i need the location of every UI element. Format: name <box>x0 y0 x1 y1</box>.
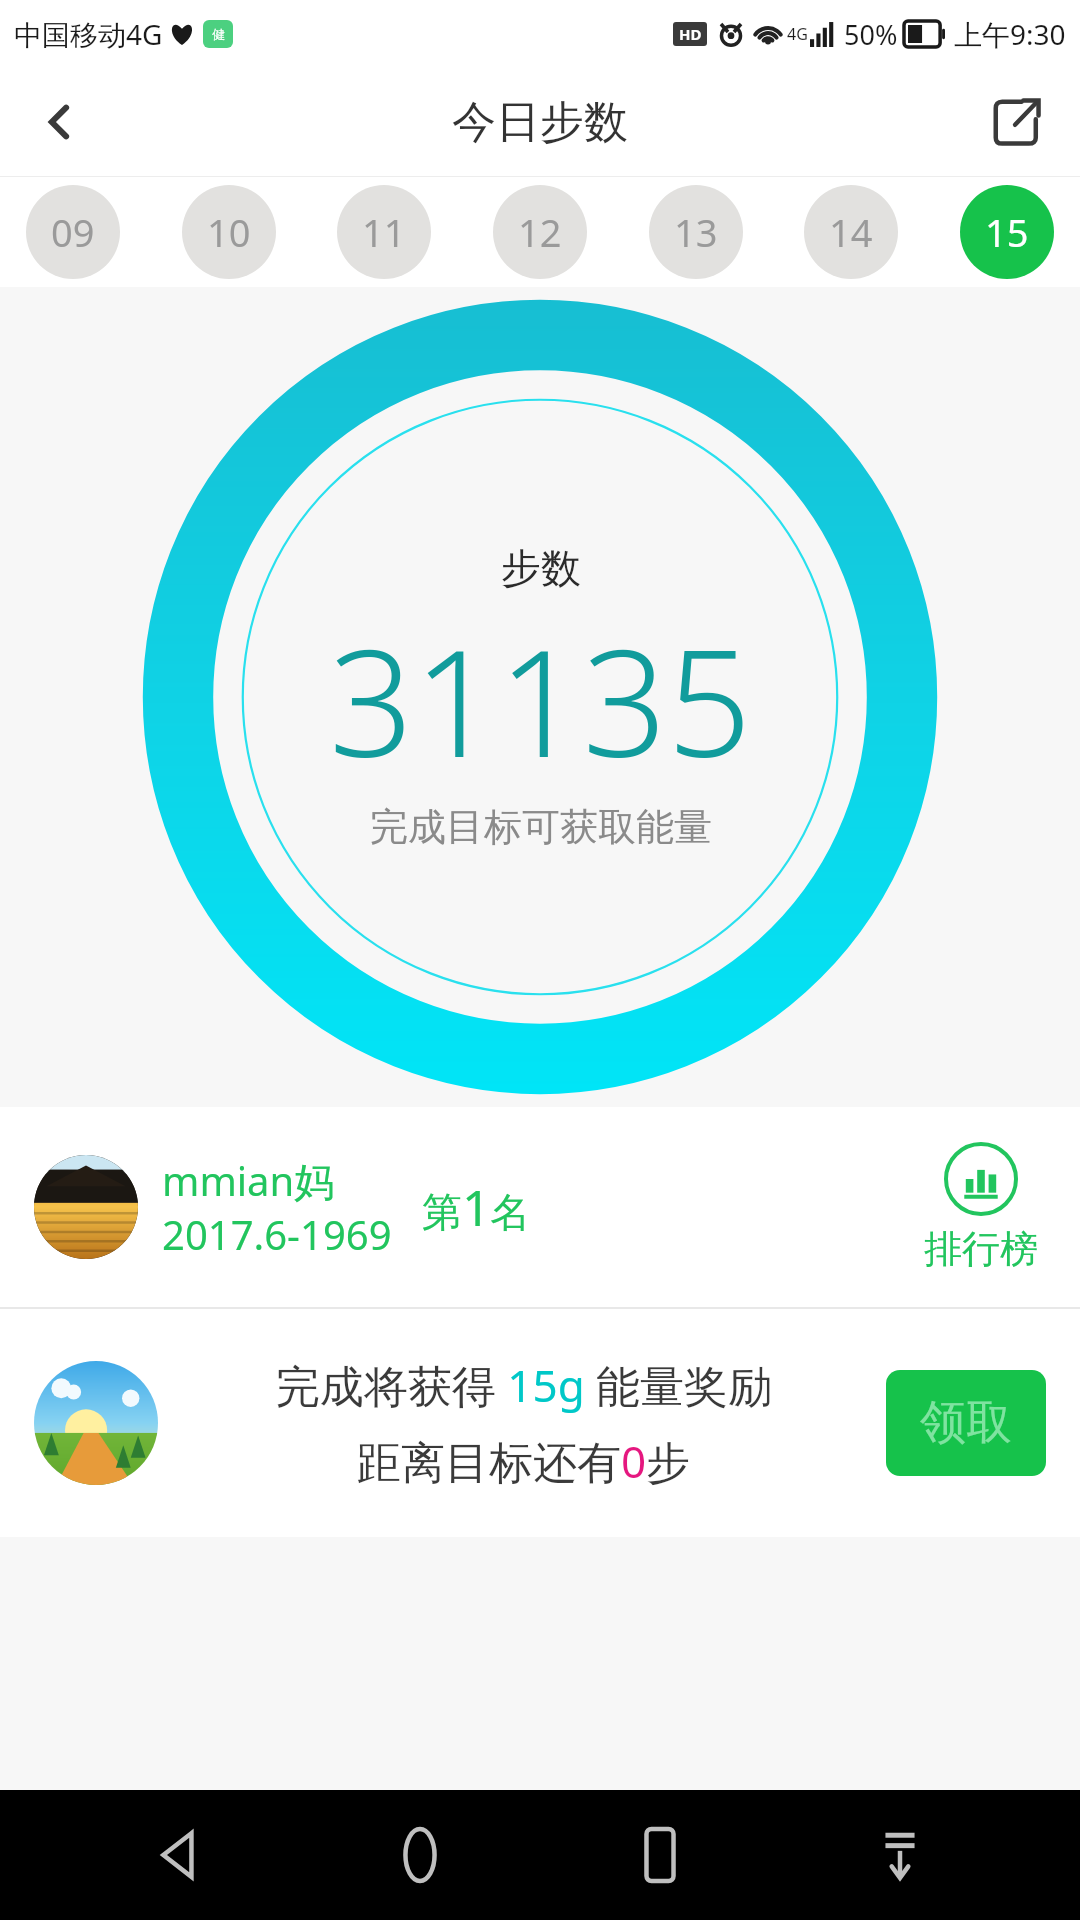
button[interactable]: 排行榜 <box>924 1141 1046 1273</box>
button[interactable]: Recents <box>600 1795 720 1915</box>
button[interactable]: Home <box>360 1795 480 1915</box>
button[interactable]: Back <box>20 82 100 162</box>
button[interactable]: 10 <box>182 185 276 279</box>
staticText: 12 <box>518 206 562 258</box>
staticText: 第1名 <box>422 1173 531 1241</box>
button[interactable]: 09 <box>26 185 120 279</box>
button[interactable]: 15 <box>960 185 1054 279</box>
button[interactable]: 11 <box>337 185 431 279</box>
staticText: 11 <box>362 206 406 258</box>
staticText: 10 <box>207 206 251 258</box>
button[interactable]: Notifications <box>840 1795 960 1915</box>
staticText: 距离目标还有0步 <box>357 1431 691 1491</box>
staticText: 14 <box>829 206 873 258</box>
staticText: 上午9:30 <box>954 15 1066 53</box>
staticText: HD <box>679 24 702 44</box>
staticText: 完成目标可获取能量 <box>370 803 712 851</box>
staticText: 31135 <box>329 599 752 801</box>
staticText: 步数 <box>501 543 581 593</box>
staticText: 4G <box>787 23 808 45</box>
staticText: 排行榜 <box>924 1225 1038 1273</box>
button[interactable]: 领取 <box>886 1370 1046 1476</box>
staticText: 09 <box>51 206 95 258</box>
staticText: 健 <box>212 26 225 42</box>
button[interactable]: Back <box>120 1795 240 1915</box>
staticText: 中国移动4G <box>14 15 163 53</box>
staticText: 50% <box>844 16 898 53</box>
button[interactable]: 14 <box>804 185 898 279</box>
button[interactable]: Share <box>976 82 1056 162</box>
staticText: 完成将获得 15g 能量奖励 <box>182 1355 866 1415</box>
staticText: 领取 <box>920 1394 1012 1452</box>
button[interactable]: 13 <box>649 185 743 279</box>
button[interactable]: mmian妈2017.6-1969 <box>0 1107 1080 1307</box>
staticText: mmian妈2017.6-1969 <box>162 1153 392 1262</box>
button[interactable]: 12 <box>493 185 587 279</box>
staticText: 13 <box>674 206 718 258</box>
staticText: 今日步数 <box>452 95 628 150</box>
staticText: 15 <box>985 206 1029 258</box>
